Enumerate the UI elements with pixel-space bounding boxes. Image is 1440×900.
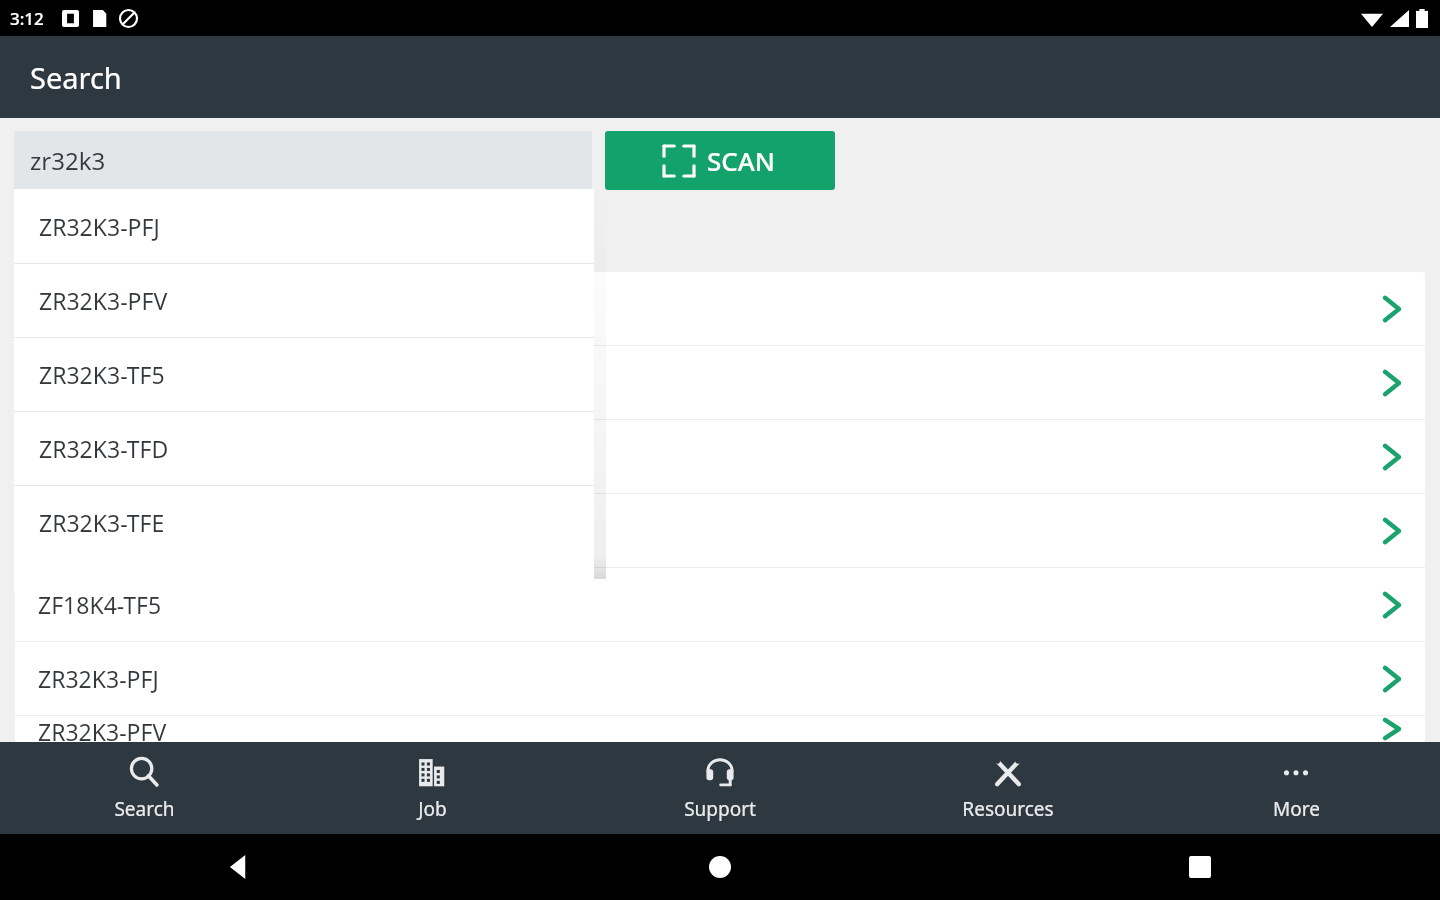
button[interactable]: ZR32K3-TFD <box>15 420 1425 493</box>
staticText: Job <box>418 796 447 822</box>
staticText: zr32k3 <box>30 144 106 177</box>
button[interactable]: Back <box>0 834 480 900</box>
button[interactable]: ZR32K3-TFE <box>15 494 1425 567</box>
button[interactable]: ZR32K3-PFV <box>14 264 594 337</box>
button[interactable]: ZF18K4-TF5 <box>15 568 1425 641</box>
button[interactable]: SCAN <box>605 131 835 190</box>
button[interactable]: ZR32K3-TFE <box>14 486 594 559</box>
staticText: Search <box>114 796 175 822</box>
button[interactable]: Home <box>480 834 960 900</box>
button[interactable]: Recent apps <box>960 834 1440 900</box>
staticText: ZR32K3-TFD <box>39 433 169 464</box>
button[interactable]: ZR32K3-TF5 <box>15 346 1425 419</box>
button[interactable]: ZR32K3-PFJ <box>14 189 594 263</box>
staticText: More <box>1273 796 1320 822</box>
staticText: ZR32K3-PFV <box>39 285 168 316</box>
staticText: SCAN <box>707 143 776 178</box>
button[interactable]: ZR32K3-TF5 <box>14 338 594 411</box>
staticText: ZR32K3-TF5 <box>38 367 164 398</box>
staticText: ZR32K3-PFJ <box>38 663 159 694</box>
button[interactable]: Resources <box>864 742 1152 834</box>
staticText: ZR32K3-TFE <box>38 515 164 546</box>
staticText: ZR32K3-TFE <box>39 507 165 538</box>
button[interactable]: ZR32K3-TFD <box>14 412 594 485</box>
staticText: ZR32K3-PFJ <box>39 211 160 242</box>
button[interactable]: More <box>1152 742 1440 834</box>
staticText: Search <box>30 58 122 97</box>
button[interactable]: ZR32K3-PFV <box>15 272 1425 345</box>
staticText: ZF18K4-TF5 <box>38 589 162 620</box>
button[interactable]: Job <box>288 742 576 834</box>
staticText: ZR32K3-TF5 <box>39 359 165 390</box>
staticText: ZR32K3-TFD <box>38 441 168 472</box>
staticText: ZR32K3-PFV <box>38 716 167 742</box>
button[interactable]: ZR32K3-PFJ <box>15 642 1425 715</box>
button[interactable]: ZR32K3-PFV <box>15 716 1425 742</box>
button[interactable]: Support <box>576 742 864 834</box>
staticText: ZR32K3-PFV <box>38 293 167 324</box>
button[interactable]: zr32k3 <box>14 131 592 189</box>
staticText: Resources <box>962 796 1054 822</box>
staticText: Support <box>684 796 756 822</box>
button[interactable]: Search <box>0 742 288 834</box>
staticText: 3:12 <box>10 7 44 30</box>
